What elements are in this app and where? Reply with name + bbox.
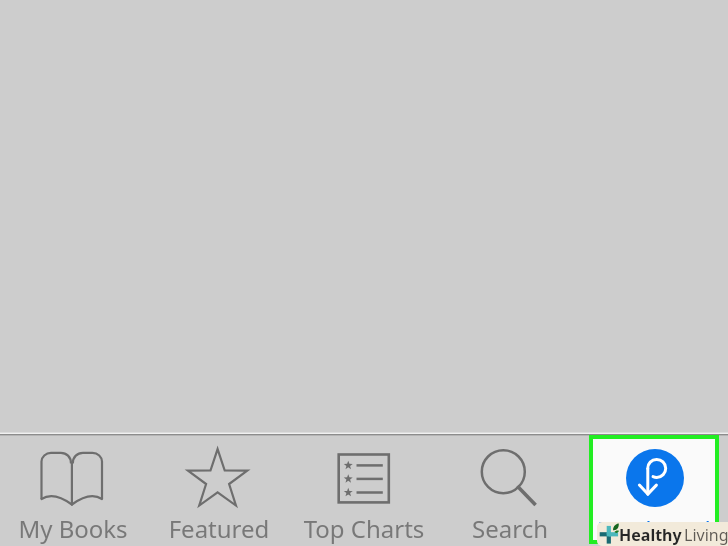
other: My Books bbox=[39, 450, 104, 507]
button[interactable]: My Books bbox=[0, 436, 146, 546]
button[interactable]: Featured bbox=[146, 436, 292, 546]
other: Search bbox=[478, 447, 540, 508]
other: Featured bbox=[185, 446, 251, 510]
staticText: Purchased bbox=[593, 514, 715, 545]
staticText: Living bbox=[684, 524, 728, 546]
button[interactable]: Top Charts bbox=[291, 436, 437, 546]
staticText: Search bbox=[437, 512, 583, 545]
staticText: Top Charts bbox=[291, 512, 437, 545]
button[interactable]: Search bbox=[437, 436, 583, 546]
button[interactable]: Purchased bbox=[589, 435, 719, 544]
staticText: My Books bbox=[0, 512, 146, 545]
staticText: Featured bbox=[146, 512, 292, 545]
other: Top Charts bbox=[335, 451, 392, 506]
staticText: Healthy bbox=[619, 524, 682, 546]
